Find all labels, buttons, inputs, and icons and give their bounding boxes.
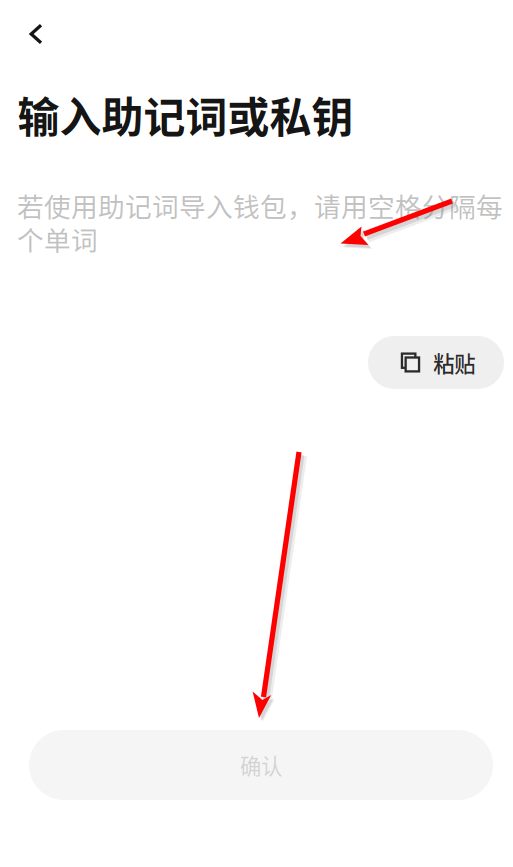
staticText: 输入助记词或私钥 [18,84,354,145]
button[interactable]: Back [13,11,59,57]
staticText: 确认 [240,750,282,780]
staticText: 粘贴 [433,347,475,378]
button[interactable]: 确认 [29,730,493,800]
staticText: 若使用助记词导入钱包，请用空格分隔每个单词 [17,186,503,258]
button[interactable]: 粘贴 [368,336,504,389]
